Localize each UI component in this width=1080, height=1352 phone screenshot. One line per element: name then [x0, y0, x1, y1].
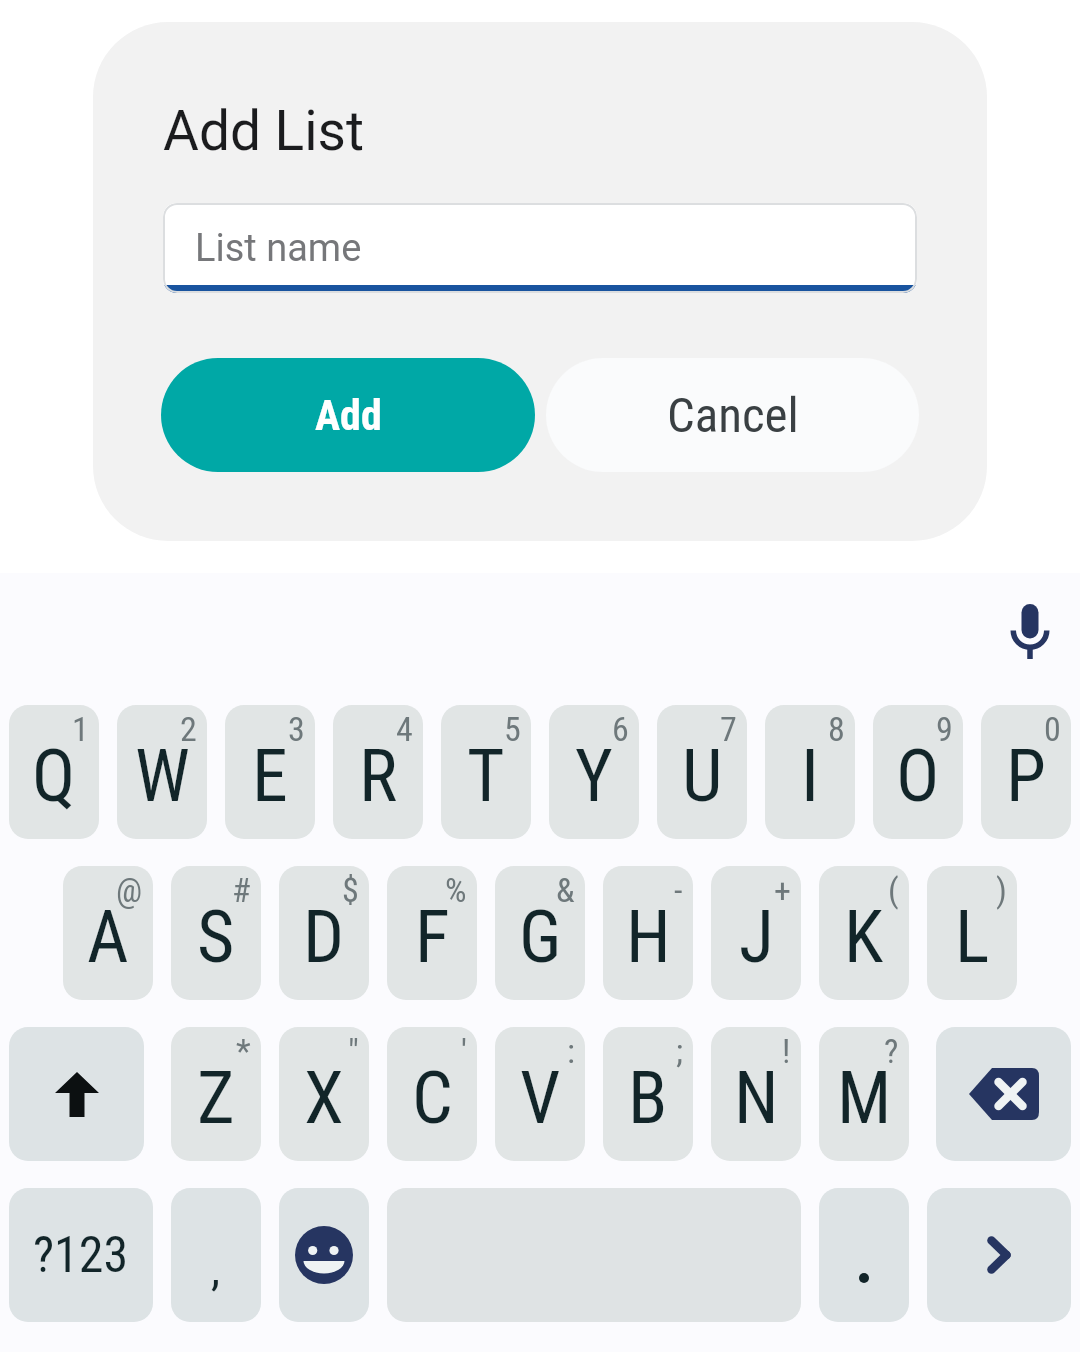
staticText: V	[520, 1056, 561, 1140]
staticText: 7	[720, 709, 737, 749]
button[interactable]: F	[387, 866, 477, 1000]
staticText: 8	[828, 709, 845, 749]
staticText: @	[116, 870, 143, 910]
button[interactable]: H	[603, 866, 693, 1000]
button[interactable]: W	[117, 705, 207, 839]
staticText: )	[996, 870, 1007, 910]
button[interactable]: U	[657, 705, 747, 839]
staticText: ?	[884, 1031, 899, 1071]
button[interactable]: V	[495, 1027, 585, 1161]
button[interactable]: Add	[161, 358, 535, 472]
button[interactable]: A	[63, 866, 153, 1000]
button[interactable]: P	[981, 705, 1071, 839]
staticText: 2	[180, 709, 197, 749]
staticText: A	[87, 895, 129, 979]
staticText: T	[467, 734, 505, 818]
staticText: E	[252, 734, 288, 818]
staticText: W	[135, 734, 190, 818]
staticText: *	[236, 1031, 251, 1071]
staticText: B	[628, 1056, 668, 1140]
button[interactable]: X	[279, 1027, 369, 1161]
staticText: S	[197, 895, 235, 979]
button[interactable]: B	[603, 1027, 693, 1161]
button[interactable]: M	[819, 1027, 909, 1161]
button[interactable]: ?123	[9, 1188, 153, 1322]
staticText: +	[774, 870, 791, 910]
staticText: L	[955, 895, 990, 979]
button[interactable]	[279, 1188, 369, 1322]
button[interactable]: Z	[171, 1027, 261, 1161]
staticText: ;	[676, 1031, 683, 1071]
button[interactable]: Y	[549, 705, 639, 839]
button[interactable]	[927, 1188, 1071, 1322]
staticText: H	[626, 895, 671, 979]
staticText: ?123	[33, 1226, 129, 1285]
staticText: Add List	[163, 99, 364, 163]
staticText: C	[412, 1056, 453, 1140]
button[interactable]	[1008, 599, 1052, 663]
staticText: Cancel	[667, 387, 799, 444]
staticText: Y	[575, 734, 613, 818]
button[interactable]	[9, 1027, 144, 1161]
button[interactable]: Cancel	[546, 358, 919, 472]
staticText: G	[519, 895, 562, 979]
button[interactable]: S	[171, 866, 261, 1000]
staticText: X	[304, 1056, 344, 1140]
button[interactable]: E	[225, 705, 315, 839]
staticText: R	[359, 734, 398, 818]
staticText: List name	[195, 226, 362, 271]
staticText: 0	[1044, 709, 1061, 749]
staticText: #	[232, 870, 251, 910]
staticText: N	[734, 1056, 779, 1140]
staticText: J	[739, 895, 774, 979]
staticText: I	[801, 734, 819, 818]
staticText: !	[782, 1031, 791, 1071]
staticText: "	[348, 1031, 359, 1071]
button[interactable]	[819, 1188, 909, 1322]
button[interactable]: J	[711, 866, 801, 1000]
staticText: O	[896, 734, 940, 818]
staticText: 6	[612, 709, 629, 749]
staticText: 1	[72, 709, 89, 749]
staticText: &	[556, 870, 575, 910]
staticText: M	[837, 1056, 892, 1140]
button[interactable]: K	[819, 866, 909, 1000]
button[interactable]: R	[333, 705, 423, 839]
staticText: $	[342, 870, 359, 910]
staticText: K	[844, 895, 884, 979]
button[interactable]: Q	[9, 705, 99, 839]
button[interactable]: List name	[163, 203, 917, 293]
staticText: 3	[288, 709, 305, 749]
staticText: ,	[211, 1242, 221, 1296]
staticText: 5	[504, 709, 521, 749]
button[interactable]: L	[927, 866, 1017, 1000]
button[interactable]: I	[765, 705, 855, 839]
staticText: Q	[32, 734, 76, 818]
staticText: Add	[315, 391, 382, 440]
staticText: D	[303, 895, 345, 979]
staticText: 4	[396, 709, 413, 749]
staticText: (	[888, 870, 899, 910]
button[interactable]: ,	[171, 1188, 261, 1322]
button[interactable]: G	[495, 866, 585, 1000]
staticText: -	[674, 870, 683, 910]
staticText: %	[445, 870, 467, 910]
button[interactable]: D	[279, 866, 369, 1000]
staticText: 9	[936, 709, 953, 749]
staticText: Z	[197, 1056, 235, 1140]
button[interactable]	[936, 1027, 1071, 1161]
staticText: U	[682, 734, 723, 818]
button[interactable]: N	[711, 1027, 801, 1161]
button[interactable]: O	[873, 705, 963, 839]
button[interactable]: C	[387, 1027, 477, 1161]
staticText: '	[461, 1031, 467, 1071]
staticText: F	[415, 895, 450, 979]
button[interactable]: T	[441, 705, 531, 839]
staticText: :	[567, 1031, 575, 1071]
staticText: P	[1006, 734, 1046, 818]
